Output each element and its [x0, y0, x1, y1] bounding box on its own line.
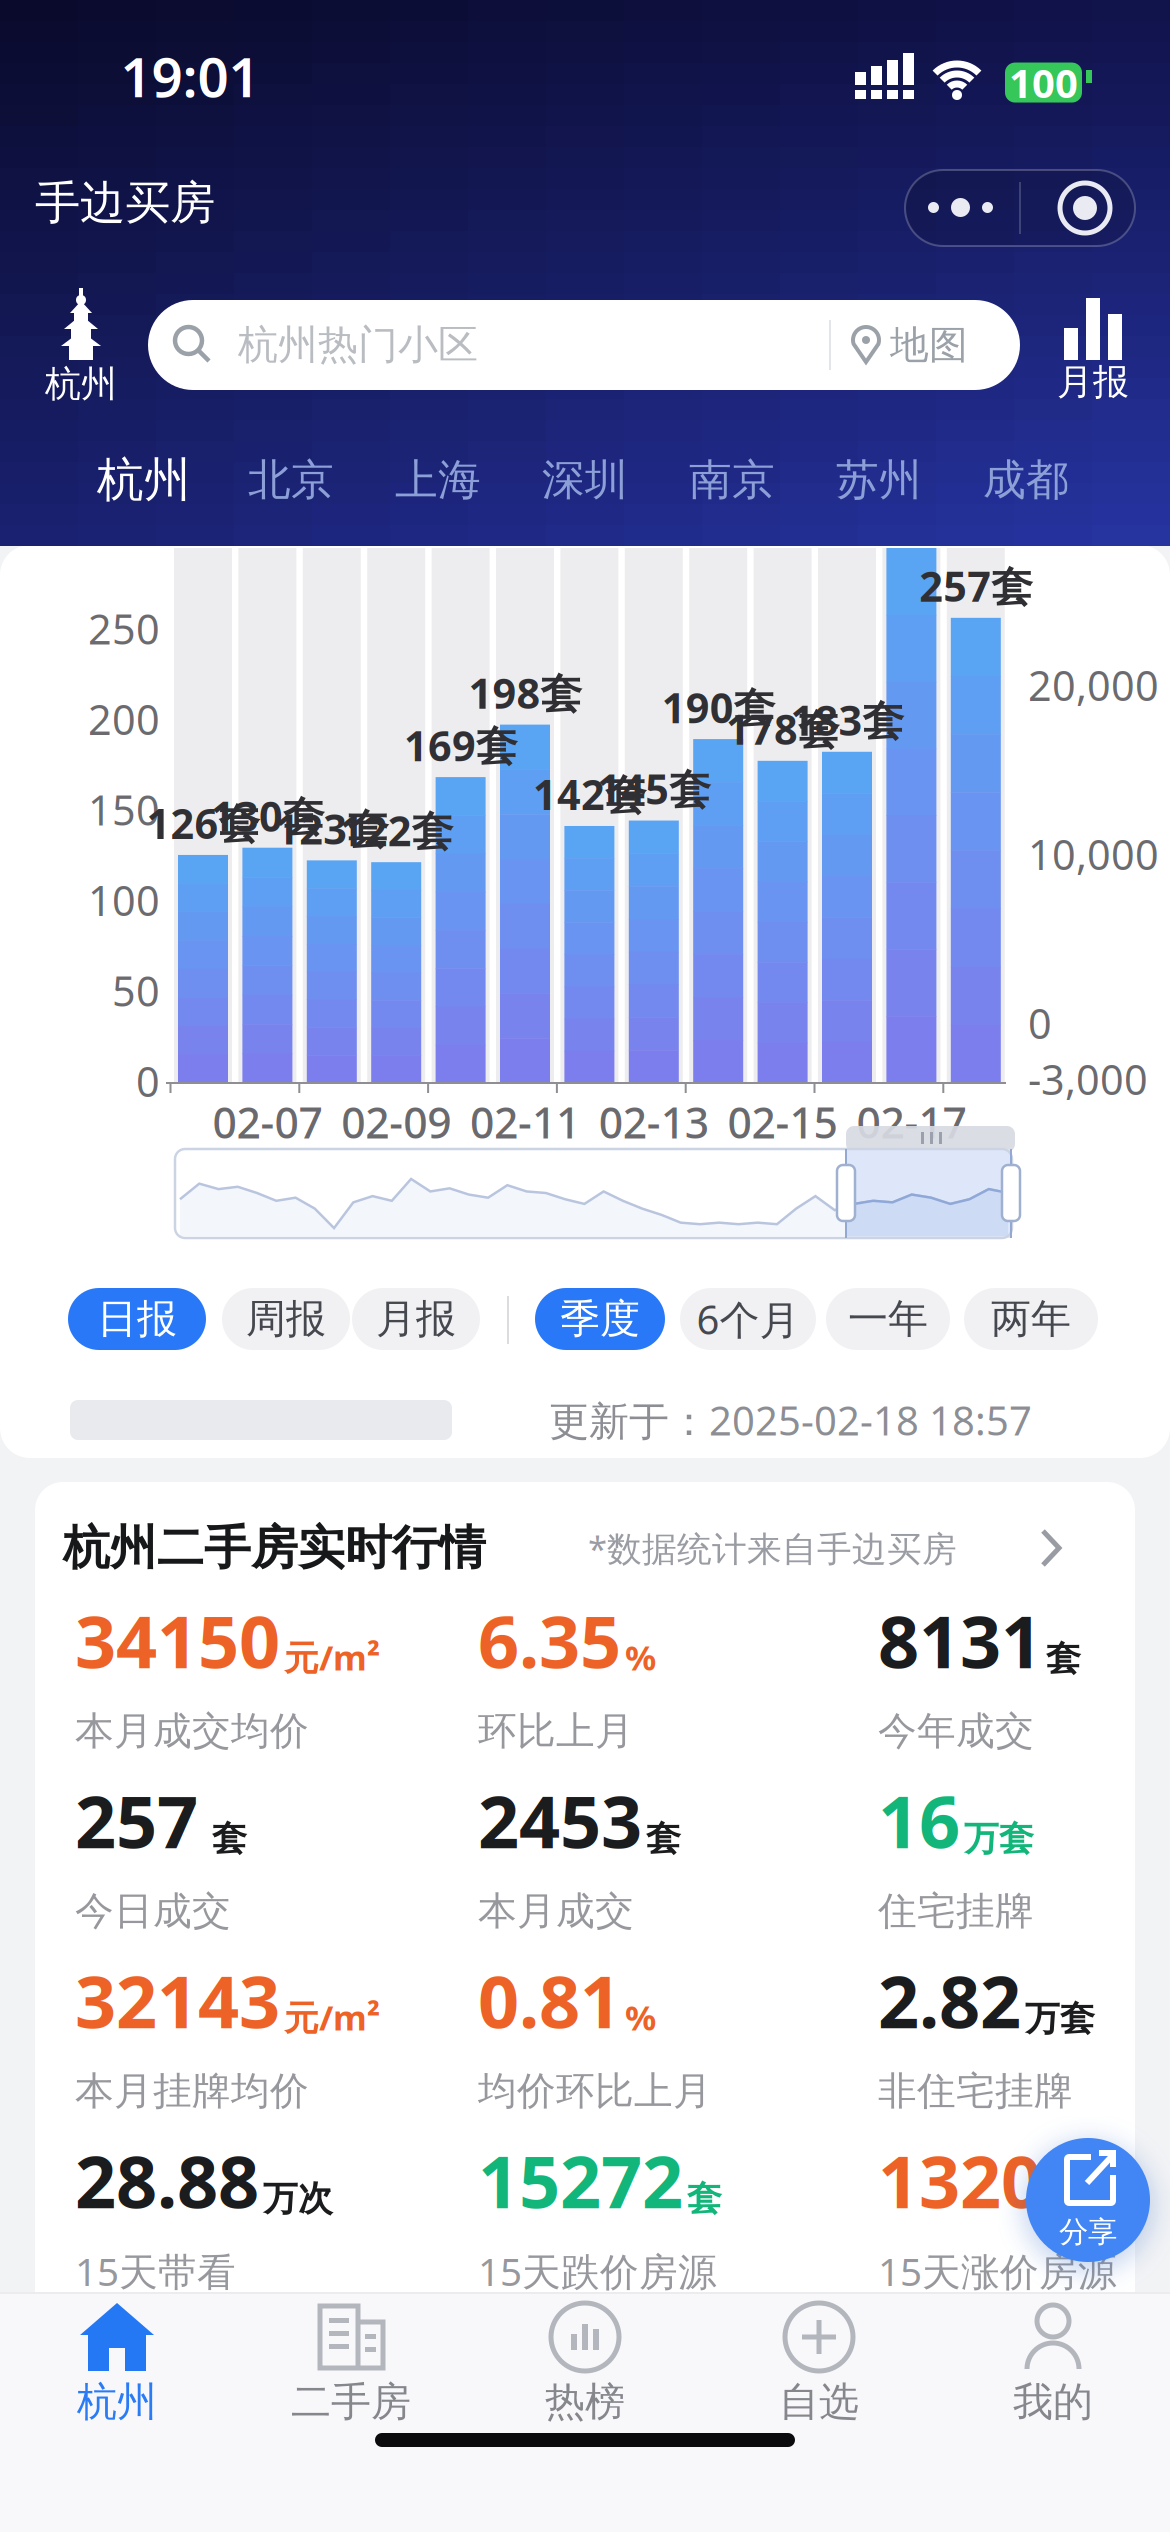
- button[interactable]: 上海: [364, 448, 511, 512]
- button[interactable]: 我的: [936, 2300, 1170, 2426]
- button[interactable]: 查看行情详情: [63, 1518, 1073, 1578]
- button[interactable]: 杭州: [0, 2300, 234, 2426]
- button[interactable]: 日报: [68, 1288, 206, 1350]
- staticText: 本月成交均价: [75, 1707, 309, 1755]
- staticText: %: [625, 1994, 656, 2040]
- button[interactable]: 更多与关闭: [905, 170, 1135, 246]
- staticText: 15天跌价房源: [478, 2245, 717, 2297]
- staticText: 02-13: [599, 1094, 709, 1150]
- staticText: -3,000: [1028, 1052, 1148, 1106]
- staticText: 月报: [376, 1294, 456, 1343]
- staticText: 178套: [726, 701, 839, 756]
- staticText: 南京: [689, 454, 775, 506]
- staticText: 28.88: [75, 2132, 259, 2228]
- staticText: 123套: [275, 801, 388, 856]
- staticText: 日报: [97, 1294, 177, 1343]
- staticText: 2.82: [878, 1952, 1021, 2048]
- staticText: 月报: [1057, 360, 1129, 404]
- staticText: 成都: [983, 454, 1069, 506]
- staticText: 122套: [340, 803, 453, 858]
- staticText: 20,000: [1028, 658, 1159, 712]
- staticText: 杭州: [97, 451, 191, 509]
- button[interactable]: 周报: [222, 1288, 350, 1350]
- staticText: 元/m²: [284, 1634, 380, 1680]
- staticText: 02-07: [212, 1094, 322, 1150]
- staticText: 0: [136, 1054, 160, 1108]
- button[interactable]: 两年: [964, 1288, 1098, 1350]
- staticText: 16: [878, 1772, 960, 1868]
- staticText: 34150: [75, 1592, 280, 1688]
- staticText: 本月成交: [478, 1887, 634, 1935]
- button[interactable]: 深圳: [511, 448, 658, 512]
- staticText: 15天涨价房源: [878, 2245, 1117, 2297]
- staticText: 198套: [468, 665, 581, 720]
- staticText: 万次: [263, 2177, 333, 2220]
- button[interactable]: 季度: [535, 1288, 665, 1350]
- staticText: 套: [1046, 1637, 1081, 1680]
- staticText: 环比上月: [478, 1707, 634, 1755]
- button[interactable]: 苏州: [805, 448, 952, 512]
- staticText: 手边买房: [35, 175, 215, 231]
- staticText: 套: [1046, 2177, 1081, 2220]
- staticText: 2453: [478, 1772, 642, 1868]
- staticText: 我的: [1013, 2377, 1093, 2426]
- staticText: 上海: [395, 454, 481, 506]
- staticText: %: [625, 1634, 656, 1680]
- staticText: 200: [88, 692, 160, 746]
- staticText: 6个月: [696, 1292, 799, 1345]
- staticText: 住宅挂牌: [878, 1887, 1034, 1935]
- button[interactable]: 一年: [826, 1288, 950, 1350]
- button[interactable]: 自选: [702, 2300, 936, 2426]
- staticText: 套: [646, 1817, 681, 1860]
- staticText: 126套: [146, 795, 259, 850]
- staticText: 两年: [991, 1294, 1071, 1343]
- staticText: 8131: [878, 1592, 1042, 1688]
- button[interactable]: 切换城市: [31, 288, 131, 404]
- button[interactable]: 南京: [658, 448, 805, 512]
- staticText: 季度: [560, 1294, 640, 1343]
- staticText: 19:01: [120, 40, 259, 112]
- button[interactable]: 二手房: [234, 2300, 468, 2426]
- staticText: 今日成交: [75, 1887, 231, 1935]
- staticText: 150: [88, 782, 160, 837]
- staticText: 二手房: [291, 2377, 411, 2426]
- staticText: 10,000: [1028, 827, 1159, 881]
- staticText: 100: [88, 873, 160, 927]
- staticText: 100: [1009, 56, 1078, 109]
- staticText: 本月挂牌均价: [75, 2067, 309, 2115]
- staticText: 02-17: [856, 1094, 966, 1150]
- staticText: 万套: [964, 1817, 1034, 1860]
- staticText: 元/m²: [284, 1994, 380, 2040]
- staticText: 145套: [597, 761, 710, 816]
- staticText: 杭州热门小区: [238, 320, 478, 369]
- staticText: 一年: [848, 1294, 928, 1343]
- button[interactable]: 热榜: [468, 2300, 702, 2426]
- staticText: 02-09: [341, 1094, 451, 1150]
- staticText: 02-15: [728, 1094, 838, 1150]
- button[interactable]: 月报: [352, 1288, 480, 1350]
- button[interactable]: 分享: [1026, 2138, 1150, 2262]
- staticText: 130套: [211, 788, 324, 843]
- staticText: 自选: [779, 2377, 859, 2426]
- staticText: 50: [112, 963, 160, 1018]
- staticText: 杭州: [77, 2377, 157, 2426]
- staticText: 杭州二手房实时行情: [63, 1519, 486, 1577]
- staticText: 分享: [1059, 2214, 1117, 2250]
- staticText: 250: [88, 601, 160, 656]
- button[interactable]: 月报: [1048, 298, 1138, 402]
- button[interactable]: 成都: [952, 448, 1099, 512]
- staticText: 15272: [478, 2132, 683, 2228]
- staticText: 套: [687, 2177, 722, 2220]
- staticText: 杭州: [45, 362, 117, 406]
- staticText: 周报: [246, 1294, 326, 1343]
- staticText: 257: [75, 1772, 198, 1868]
- staticText: 169套: [404, 718, 517, 773]
- button[interactable]: 搜索小区: [148, 300, 1020, 390]
- button[interactable]: 6个月: [680, 1288, 816, 1350]
- staticText: 苏州: [836, 454, 922, 506]
- button[interactable]: 北京: [217, 448, 364, 512]
- staticText: 15天带看: [75, 2245, 236, 2297]
- staticText: 142套: [533, 766, 646, 821]
- staticText: 地图: [890, 321, 968, 369]
- button[interactable]: 杭州: [70, 448, 217, 512]
